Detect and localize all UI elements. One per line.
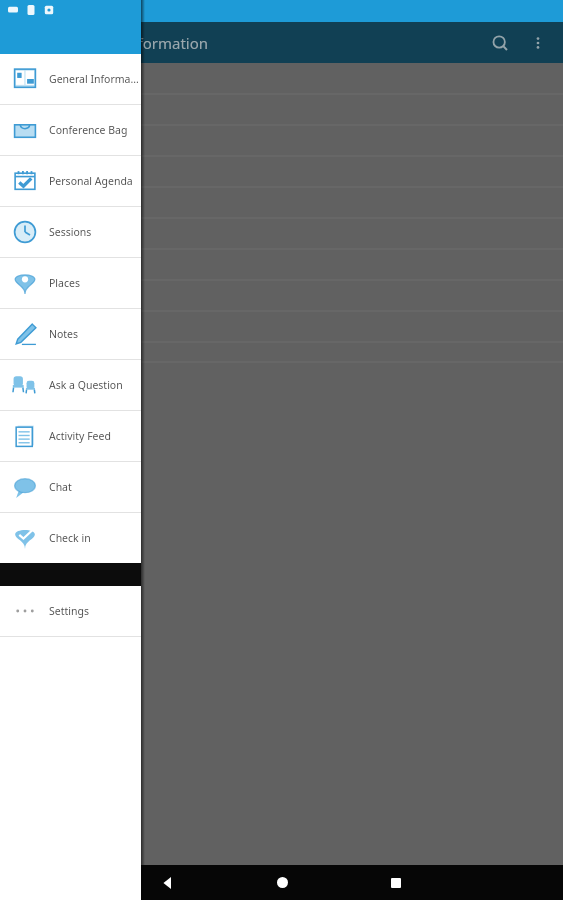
button[interactable]: Check in xyxy=(0,513,141,563)
staticText: Conference Bag xyxy=(49,123,128,137)
staticText: General Information xyxy=(64,33,209,53)
button[interactable]: Home xyxy=(252,865,312,900)
staticText: Settings xyxy=(49,604,89,618)
staticText: Activity Feed xyxy=(49,429,111,443)
staticText: Chat xyxy=(49,480,72,494)
button[interactable]: Back xyxy=(138,865,198,900)
staticText: Ask a Question xyxy=(49,378,123,392)
button[interactable]: Settings xyxy=(0,586,141,636)
button[interactable]: Sessions xyxy=(0,207,141,257)
button[interactable]: More options xyxy=(521,26,555,60)
button[interactable]: Ask a Question xyxy=(0,360,141,410)
button[interactable]: General Informa… xyxy=(0,54,141,104)
staticText: Personal Agenda xyxy=(49,174,133,188)
staticText: General Informa… xyxy=(49,72,139,86)
button[interactable]: Activity Feed xyxy=(0,411,141,461)
staticText: Check in xyxy=(49,531,91,545)
button[interactable]: Places xyxy=(0,258,141,308)
staticText: Sessions xyxy=(49,225,92,239)
button[interactable]: Conference Bag xyxy=(0,105,141,155)
button[interactable]: Notes xyxy=(0,309,141,359)
staticText: Places xyxy=(49,276,80,290)
button[interactable]: Chat xyxy=(0,462,141,512)
staticText: Notes xyxy=(49,327,79,341)
button[interactable]: Search xyxy=(483,26,517,60)
button[interactable]: Recent apps xyxy=(366,865,426,900)
button[interactable]: Personal Agenda xyxy=(0,156,141,206)
